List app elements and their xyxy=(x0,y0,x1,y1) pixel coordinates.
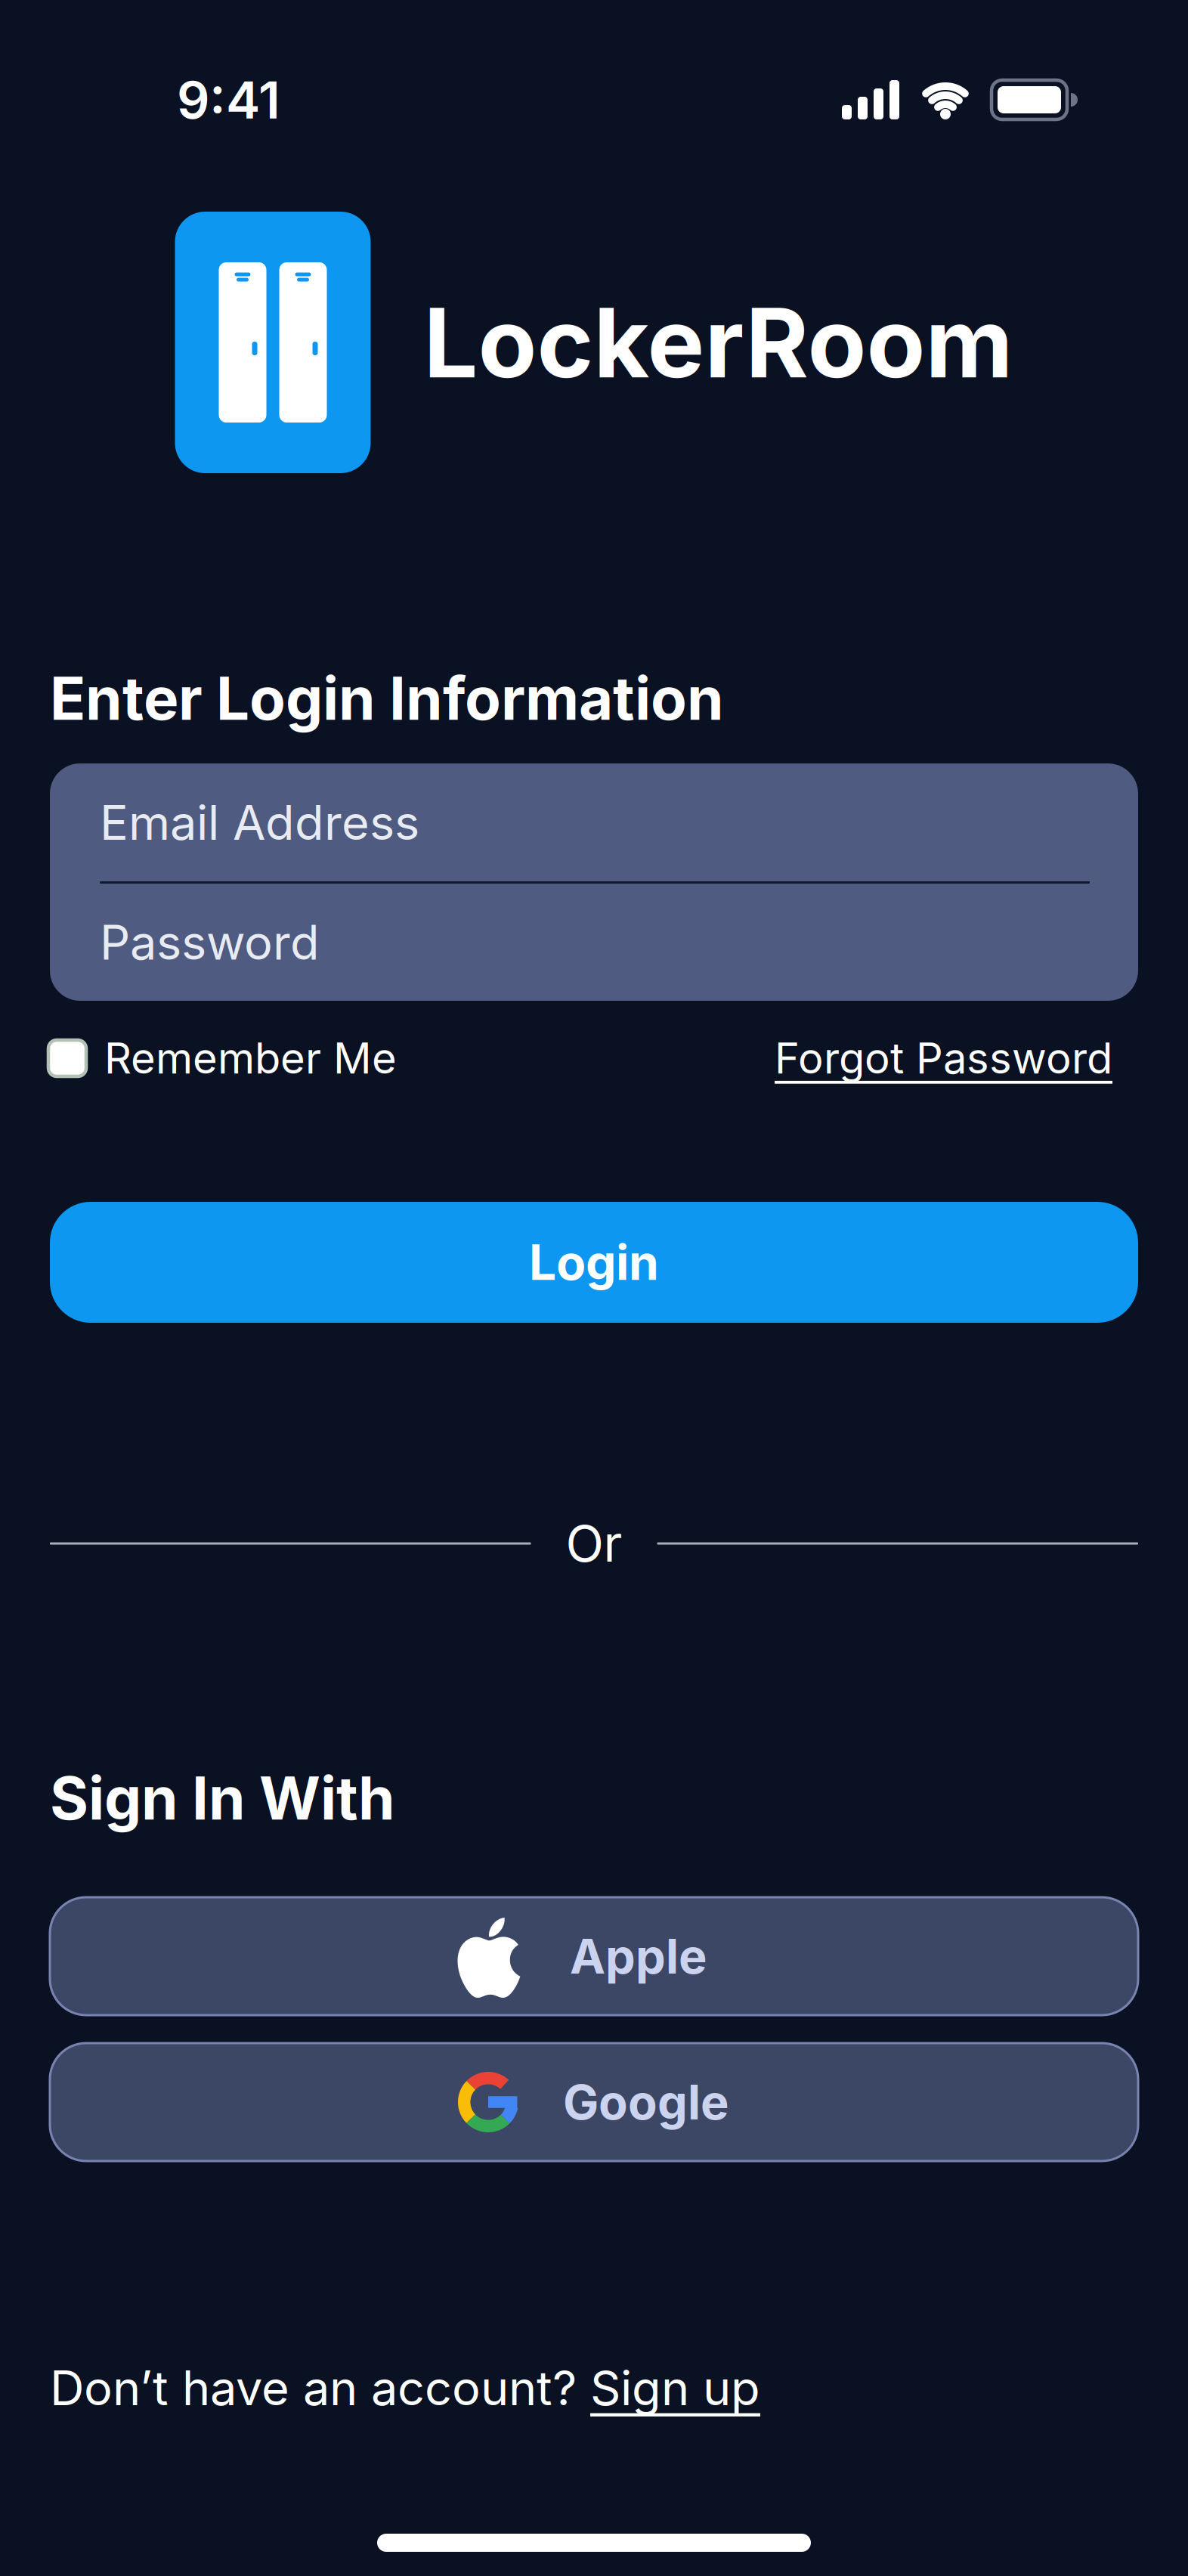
staticText: Remember Me xyxy=(104,1033,397,1084)
staticText: Forgot Password xyxy=(775,1033,1112,1084)
staticText: Or xyxy=(566,1513,622,1574)
staticText: LockerRoom xyxy=(424,284,1013,401)
staticText: Password xyxy=(100,913,320,971)
staticText: Sign up xyxy=(590,2359,760,2417)
staticText: Sign In With xyxy=(50,1763,395,1834)
staticText: 9:41 xyxy=(177,69,280,131)
staticText: Don’t have an account? xyxy=(50,2359,590,2417)
staticText: Email Address xyxy=(100,794,419,851)
staticText: Apple xyxy=(570,1927,707,1985)
staticText: Enter Login Information xyxy=(50,663,724,734)
staticText: Google xyxy=(563,2073,729,2131)
staticText: Login xyxy=(529,1233,659,1292)
